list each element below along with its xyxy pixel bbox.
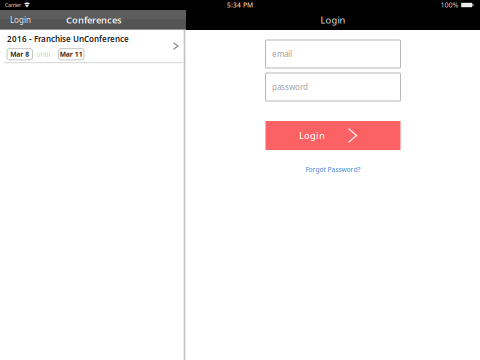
staticText: 100%	[441, 1, 459, 9]
staticText: email	[272, 49, 292, 59]
staticText: until	[36, 50, 50, 59]
staticText: Forgot Password?	[305, 165, 360, 174]
staticText: Login	[299, 129, 325, 142]
staticText: Mar 11	[60, 50, 83, 59]
staticText: 2016 - Franchise UnConference	[7, 33, 129, 44]
button[interactable]: Forgot Password?	[299, 164, 366, 175]
staticText: Conferences	[66, 14, 122, 26]
button[interactable]: Login	[0, 10, 38, 30]
staticText: Login	[10, 15, 31, 25]
staticText: Mar 8	[10, 50, 29, 59]
button[interactable]: Login	[265, 121, 400, 150]
staticText: Login	[320, 14, 345, 26]
staticText: Carrier	[5, 1, 21, 9]
button[interactable]: 2016 - Franchise UnConference	[0, 30, 186, 63]
staticText: 5:34 PM	[227, 1, 253, 9]
staticText: password	[272, 82, 308, 92]
